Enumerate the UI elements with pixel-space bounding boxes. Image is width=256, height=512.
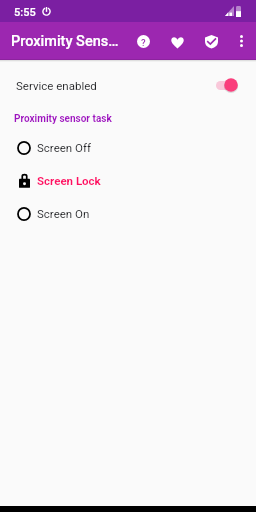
button[interactable]: Help	[124, 22, 158, 60]
button[interactable]: Screen On	[0, 197, 256, 230]
staticText: ?	[141, 37, 146, 48]
button[interactable]: Service enabled	[0, 72, 256, 98]
staticText: Service enabled	[16, 79, 97, 92]
staticText: Screen Off	[37, 141, 91, 154]
button[interactable]: Screen Lock	[0, 164, 256, 197]
button[interactable]: Screen Off	[0, 131, 256, 164]
button[interactable]: Security	[192, 22, 226, 60]
staticText: Proximity sensor task	[14, 113, 112, 125]
staticText: 5:55	[14, 6, 36, 19]
staticText: Proximity Sens…	[11, 33, 119, 50]
button[interactable]: More options	[226, 22, 256, 60]
staticText: Screen On	[37, 207, 90, 220]
button[interactable]: Favorite	[158, 22, 192, 60]
staticText: Screen Lock	[37, 174, 101, 187]
